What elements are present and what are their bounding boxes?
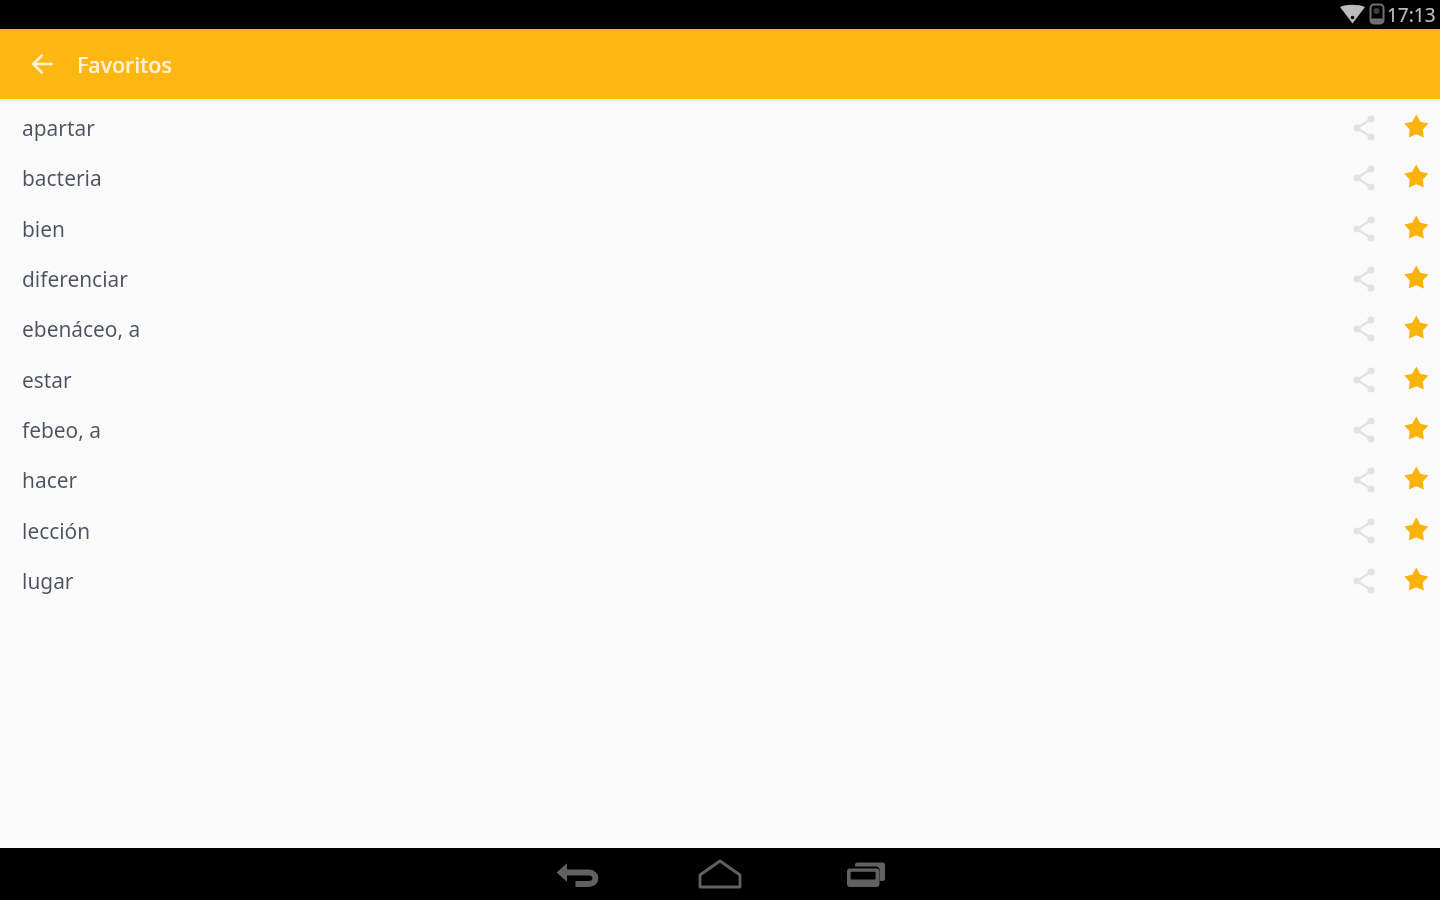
button[interactable]: Remove from favorites <box>1393 207 1437 251</box>
button[interactable]: Share <box>1342 257 1386 301</box>
button[interactable]: Remove from favorites <box>1393 257 1437 301</box>
staticText: diferenciar <box>22 265 128 293</box>
button[interactable]: ebenáceo, a <box>0 303 1440 354</box>
button[interactable]: Remove from favorites <box>1393 559 1437 603</box>
button[interactable]: Share <box>1342 207 1386 251</box>
button[interactable]: Remove from favorites <box>1393 106 1437 150</box>
button[interactable]: Remove from favorites <box>1393 156 1437 200</box>
staticText: estar <box>22 366 72 394</box>
button[interactable]: hacer <box>0 454 1440 505</box>
button[interactable]: estar <box>0 354 1440 405</box>
button[interactable]: Share <box>1342 509 1386 553</box>
button[interactable]: Share <box>1342 358 1386 402</box>
button[interactable]: Navigate up <box>21 43 63 85</box>
button[interactable]: Share <box>1342 559 1386 603</box>
button[interactable]: diferenciar <box>0 253 1440 304</box>
button[interactable]: Remove from favorites <box>1393 358 1437 402</box>
staticText: Favoritos <box>77 50 172 79</box>
button[interactable]: Home <box>692 848 748 900</box>
staticText: lección <box>22 517 91 545</box>
button[interactable]: Share <box>1342 106 1386 150</box>
button[interactable]: Back <box>548 848 604 900</box>
button[interactable]: bacteria <box>0 152 1440 203</box>
button[interactable]: Recent apps <box>836 848 892 900</box>
staticText: bien <box>22 215 65 243</box>
button[interactable]: Remove from favorites <box>1393 509 1437 553</box>
button[interactable]: Share <box>1342 408 1386 452</box>
button[interactable]: febeo, a <box>0 404 1440 455</box>
staticText: lugar <box>22 567 74 595</box>
button[interactable]: Remove from favorites <box>1393 408 1437 452</box>
button[interactable]: lección <box>0 505 1440 556</box>
button[interactable]: lugar <box>0 555 1440 606</box>
staticText: bacteria <box>22 164 102 192</box>
staticText: febeo, a <box>22 416 101 444</box>
button[interactable]: Share <box>1342 156 1386 200</box>
button[interactable]: bien <box>0 203 1440 254</box>
staticText: hacer <box>22 466 78 494</box>
button[interactable]: apartar <box>0 102 1440 153</box>
staticText: apartar <box>22 114 95 142</box>
staticText: 17:13 <box>1387 2 1436 28</box>
button[interactable]: Remove from favorites <box>1393 307 1437 351</box>
button[interactable]: Share <box>1342 458 1386 502</box>
button[interactable]: Remove from favorites <box>1393 458 1437 502</box>
button[interactable]: Share <box>1342 307 1386 351</box>
staticText: ebenáceo, a <box>22 315 141 343</box>
